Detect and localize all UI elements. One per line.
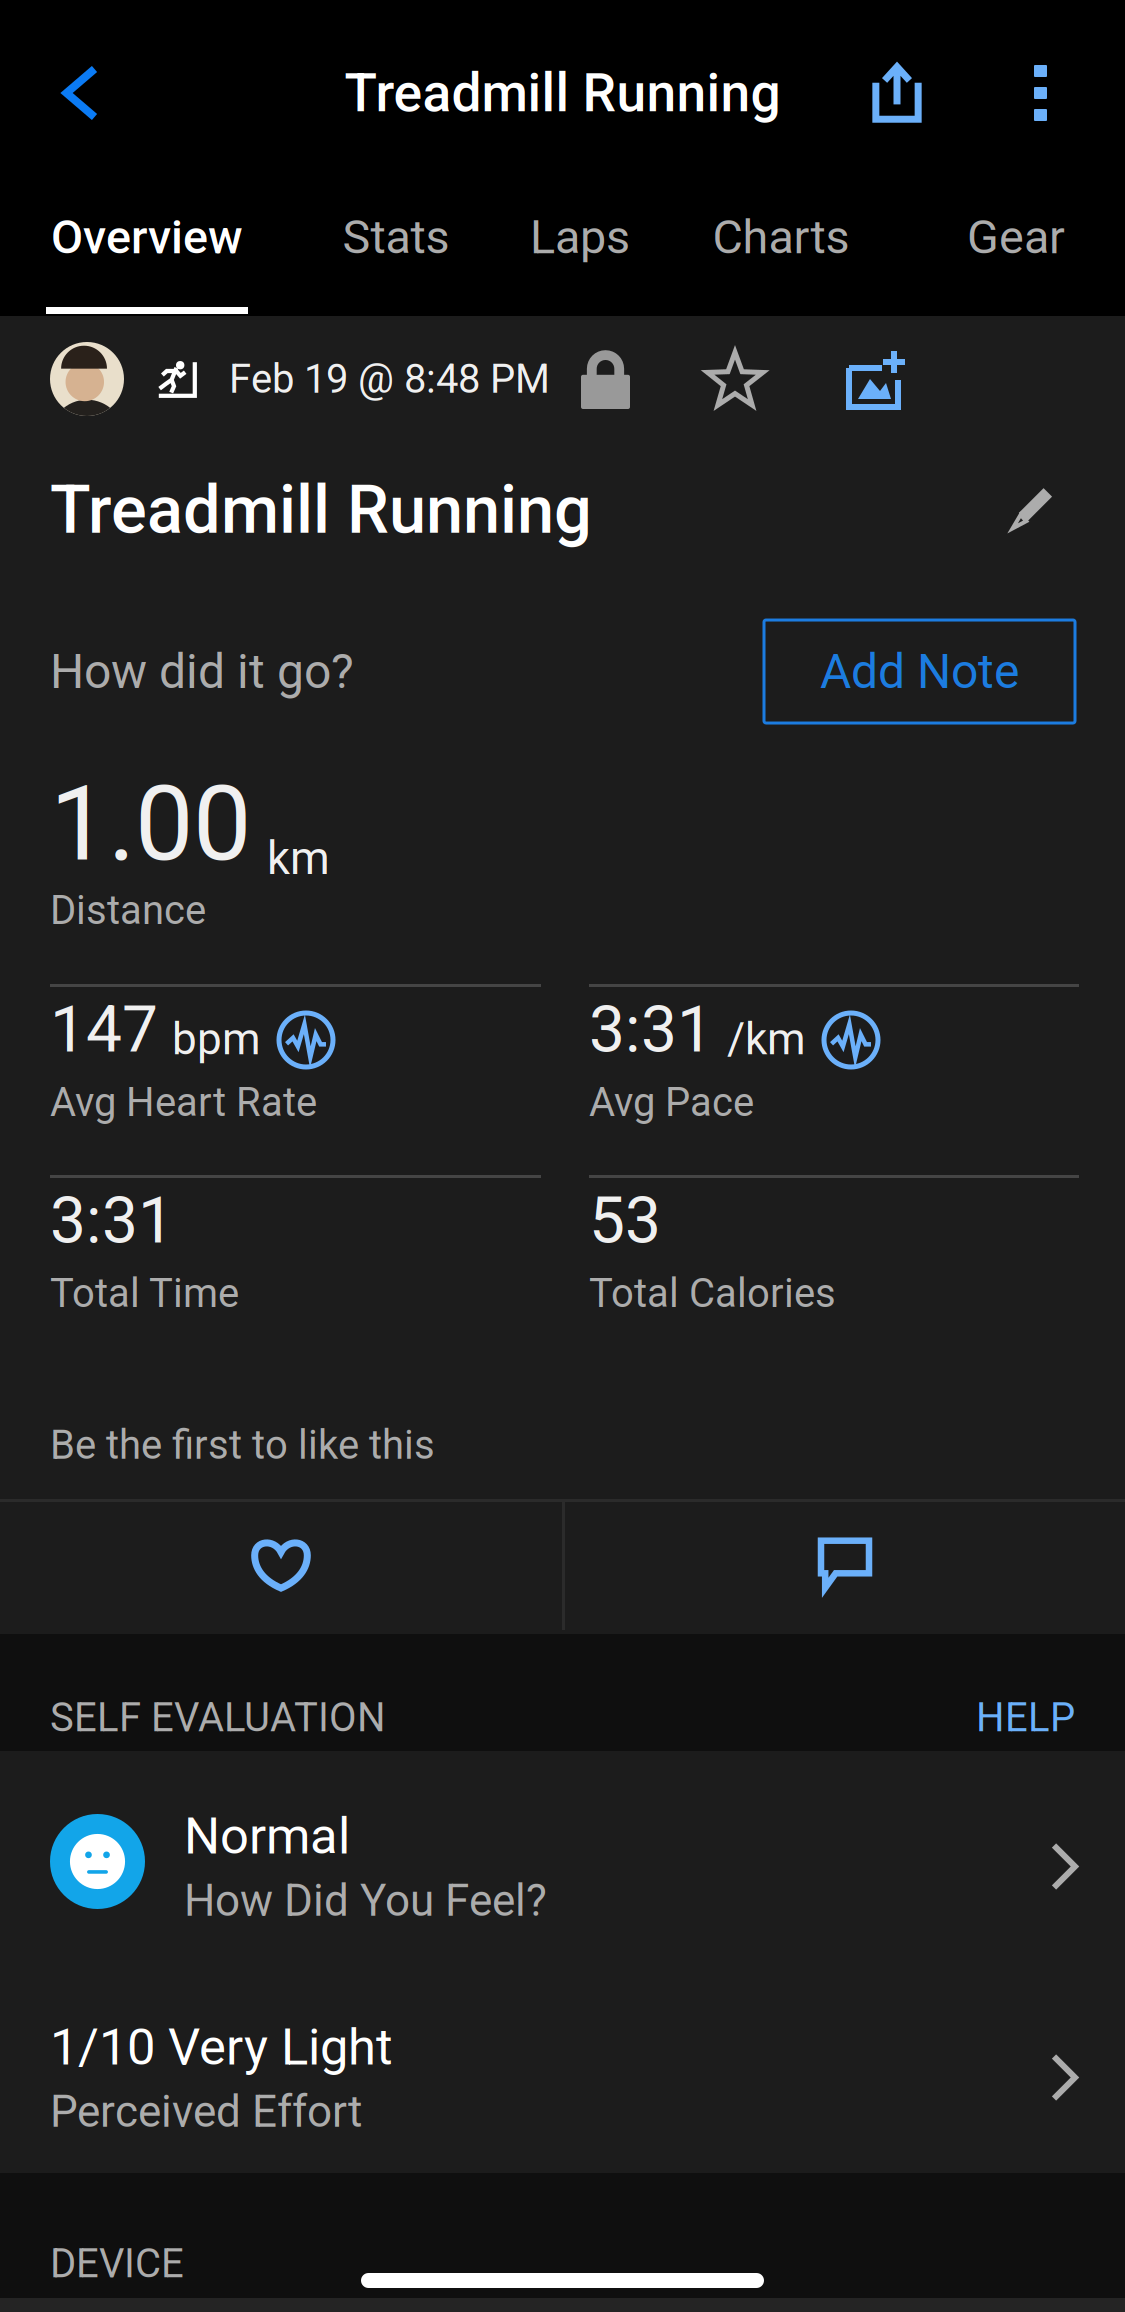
staticText: Avg Heart Rate — [50, 1079, 317, 1126]
staticText: Overview — [51, 210, 243, 265]
staticText: 3:31 — [589, 992, 713, 1067]
staticText: How Did You Feel? — [184, 1875, 547, 1926]
button[interactable]: Privacy — [550, 332, 661, 426]
staticText: bpm — [172, 1013, 261, 1065]
staticText: Total Calories — [589, 1270, 836, 1317]
staticText: Distance — [50, 887, 206, 934]
button[interactable]: Back — [0, 0, 161, 186]
staticText: DEVICE — [50, 2240, 184, 2287]
staticText: Stats — [342, 210, 449, 265]
staticText: Avg Pace — [589, 1079, 754, 1126]
button[interactable]: Comment — [565, 1499, 1125, 1630]
button[interactable]: Add photo — [809, 332, 943, 426]
staticText: Total Time — [50, 1270, 239, 1317]
staticText: Be the first to like this — [50, 1422, 435, 1468]
staticText: Feb 19 @ 8:48 PM — [229, 356, 550, 402]
button[interactable]: Charts — [714, 186, 848, 316]
staticText: Gear — [967, 210, 1065, 265]
staticText: Treadmill Running — [344, 62, 780, 124]
button[interactable]: Stats — [342, 186, 450, 316]
staticText: Perceived Effort — [50, 2086, 362, 2137]
staticText: 3:31 — [50, 1183, 174, 1258]
button[interactable]: Favorite — [661, 332, 809, 426]
button[interactable]: Edit — [989, 468, 1073, 552]
staticText: Normal — [184, 1806, 350, 1866]
button[interactable]: Share — [838, 0, 956, 186]
staticText: How did it go? — [50, 643, 354, 700]
button[interactable]: More options — [956, 0, 1125, 186]
staticText: SELF EVALUATION — [50, 1694, 386, 1741]
button[interactable]: Add Note — [764, 620, 1075, 723]
staticText: 1/10 Very Light — [50, 2017, 393, 2077]
button[interactable]: 1/10 Very Light — [0, 1962, 1125, 2173]
button[interactable]: HELP — [976, 1694, 1075, 1741]
button[interactable]: Normal — [0, 1751, 1125, 1962]
button[interactable]: Like — [0, 1499, 562, 1630]
staticText: km — [267, 832, 330, 885]
staticText: 53 — [589, 1183, 661, 1258]
button[interactable]: Gear — [968, 186, 1064, 316]
staticText: 147 — [50, 992, 158, 1067]
staticText: 1.00 — [50, 763, 251, 885]
staticText: Treadmill Running — [50, 471, 592, 549]
staticText: HELP — [976, 1694, 1075, 1741]
staticText: Charts — [712, 210, 849, 265]
staticText: /km — [727, 1013, 806, 1065]
button[interactable]: Overview — [46, 186, 248, 316]
staticText: Add Note — [820, 643, 1019, 700]
staticText: Laps — [530, 210, 630, 265]
button[interactable]: Laps — [530, 186, 630, 316]
